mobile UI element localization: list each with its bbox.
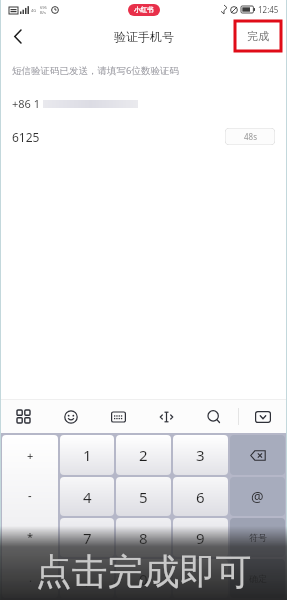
button[interactable]: Back [0, 19, 34, 53]
button[interactable]: Move cursor [142, 400, 190, 433]
button[interactable]: 1 [60, 435, 114, 475]
staticText: 12:45 [258, 4, 279, 15]
staticText: @ [251, 487, 264, 506]
button[interactable]: 7 [60, 518, 114, 557]
staticText: 4 [83, 487, 92, 507]
staticText: 4G [31, 8, 37, 13]
button[interactable]: Search [190, 400, 238, 433]
staticText: 9 [196, 528, 205, 548]
button[interactable]: 6 [173, 477, 228, 516]
staticText: 5 [139, 487, 148, 507]
button[interactable]: 4 [60, 477, 114, 516]
staticText: 696 [40, 5, 47, 10]
staticText: - [28, 488, 32, 503]
staticText: 确定 [249, 573, 267, 584]
button[interactable]: 5 [116, 477, 171, 516]
button[interactable]: + [2, 435, 58, 598]
button[interactable]: Backspace [230, 435, 285, 475]
staticText: , [85, 569, 90, 589]
staticText: B/s [40, 10, 47, 15]
button[interactable]: 48s [225, 128, 275, 145]
staticText: 1 [83, 445, 92, 465]
staticText: +86 1 [12, 96, 41, 111]
staticText: 验证手机号 [114, 29, 174, 44]
staticText: 7 [83, 528, 92, 548]
button[interactable]: 确定 [230, 559, 285, 598]
staticText: . [29, 570, 32, 585]
staticText: * [27, 529, 34, 544]
staticText: . [198, 569, 203, 589]
button[interactable]: 0 [116, 559, 171, 598]
button[interactable]: 2 [116, 435, 171, 475]
staticText: 短信验证码已发送，请填写6位数验证码 [12, 64, 179, 77]
button[interactable]: 3 [173, 435, 228, 475]
button[interactable]: @ [230, 477, 285, 516]
button[interactable]: 8 [116, 518, 171, 557]
staticText: + [27, 448, 34, 463]
button[interactable]: Hide keyboard [239, 400, 287, 433]
staticText: 6 [196, 487, 205, 507]
staticText: 小红书 [134, 6, 154, 14]
button[interactable]: , [60, 559, 114, 598]
staticText: 8 [139, 528, 148, 548]
button[interactable]: Emoji [47, 400, 94, 433]
staticText: 48s [244, 131, 257, 142]
button[interactable]: Apps [0, 400, 47, 433]
button[interactable]: 完成 [235, 21, 281, 51]
button[interactable]: Keyboard [94, 400, 142, 433]
button[interactable]: 9 [173, 518, 228, 557]
staticText: 符号 [249, 532, 267, 543]
staticText: 点击完成即可 [0, 549, 287, 594]
button[interactable]: . [173, 559, 228, 598]
staticText: 0 [139, 569, 148, 589]
staticText: 2 [139, 445, 148, 465]
staticText: 完成 [247, 29, 269, 43]
staticText: 3 [196, 445, 205, 465]
button[interactable]: 符号 [230, 518, 285, 557]
staticText: 6125 [12, 129, 40, 145]
